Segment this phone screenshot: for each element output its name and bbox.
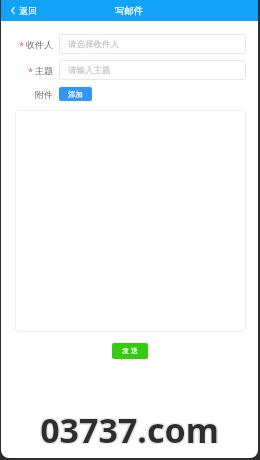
staticText: 03737.com — [41, 407, 220, 453]
staticText: 03737.com — [39, 408, 218, 454]
button[interactable]: 请选择收件人 — [59, 34, 246, 54]
staticText: 03737.com — [41, 408, 220, 454]
staticText: 请输入主题 — [68, 65, 111, 76]
staticText: * — [19, 39, 24, 51]
button[interactable]: 请输入主题 — [59, 60, 246, 80]
staticText: 添加 — [68, 90, 83, 99]
button[interactable]: 返回 — [8, 3, 39, 18]
staticText: * — [28, 65, 33, 77]
staticText: 03737.com — [41, 406, 220, 452]
staticText: 03737.com — [40, 408, 219, 454]
staticText: 发 送 — [122, 346, 138, 356]
staticText: 返回 — [19, 5, 37, 16]
staticText: 收件人 — [26, 39, 53, 50]
staticText: 附件 — [35, 89, 53, 100]
staticText: 主题 — [35, 65, 53, 76]
staticText: 03737.com — [39, 406, 218, 452]
button[interactable]: 发 送 — [112, 343, 148, 359]
staticText: 03737.com — [40, 407, 219, 453]
staticText: 03737.com — [40, 406, 219, 452]
staticText: 请选择收件人 — [68, 39, 119, 50]
staticText: 写邮件 — [115, 5, 144, 17]
staticText: 03737.com — [39, 407, 218, 453]
button[interactable]: 添加 — [59, 87, 92, 101]
